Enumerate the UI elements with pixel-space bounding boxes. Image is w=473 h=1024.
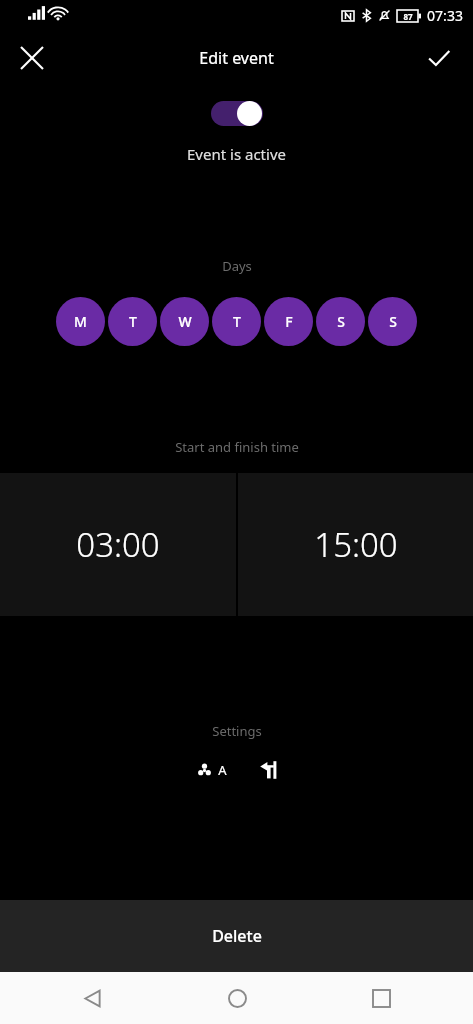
staticText: 15:00: [314, 522, 398, 567]
button[interactable]: T: [212, 297, 261, 346]
staticText: 87: [403, 11, 413, 22]
button[interactable]: Recents: [359, 976, 403, 1020]
button[interactable]: Event is active toggle: [211, 100, 263, 126]
button[interactable]: 15:00: [238, 473, 473, 616]
staticText: Event is active: [187, 144, 286, 164]
button[interactable]: Home: [215, 976, 259, 1020]
staticText: A: [218, 761, 227, 779]
staticText: S: [389, 312, 397, 331]
button[interactable]: S: [316, 297, 365, 346]
button[interactable]: F: [264, 297, 313, 346]
button[interactable]: Fan speed auto: [193, 761, 231, 779]
staticText: Settings: [212, 722, 262, 740]
staticText: T: [233, 312, 241, 331]
button[interactable]: Close: [10, 36, 54, 80]
staticText: W: [178, 312, 192, 331]
button[interactable]: M: [56, 297, 105, 346]
staticText: 07:33: [427, 6, 463, 25]
staticText: F: [285, 312, 293, 331]
staticText: Edit event: [199, 47, 274, 69]
button[interactable]: W: [160, 297, 209, 346]
button[interactable]: S: [368, 297, 417, 346]
staticText: Start and finish time: [175, 438, 299, 456]
staticText: S: [337, 312, 345, 331]
button[interactable]: Air direction: [258, 759, 280, 781]
button[interactable]: Delete: [0, 900, 473, 972]
staticText: M: [74, 312, 87, 331]
button[interactable]: T: [108, 297, 157, 346]
staticText: Delete: [212, 925, 262, 947]
staticText: 03:00: [76, 522, 160, 567]
button[interactable]: Save: [417, 36, 461, 80]
staticText: T: [129, 312, 137, 331]
button[interactable]: Back: [70, 976, 114, 1020]
staticText: Days: [222, 257, 252, 275]
button[interactable]: 03:00: [0, 473, 236, 616]
